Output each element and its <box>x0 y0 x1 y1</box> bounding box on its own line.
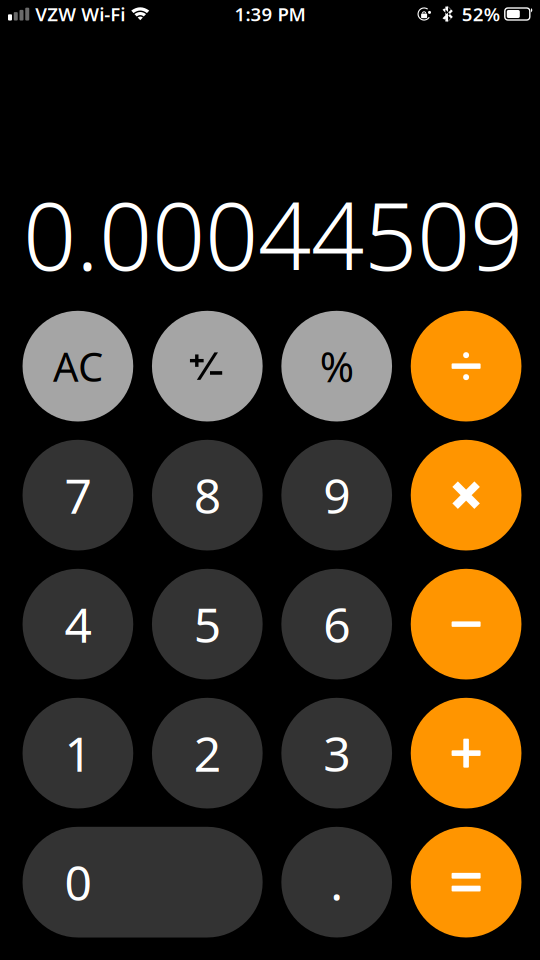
staticText: % <box>320 339 354 394</box>
staticText: 1:39 PM <box>234 2 305 26</box>
button[interactable]: . <box>281 827 392 937</box>
staticText: 6 <box>323 592 350 656</box>
button[interactable]: Multiply <box>411 440 521 550</box>
button[interactable]: 0 <box>23 827 263 937</box>
button[interactable]: 4 <box>23 569 133 679</box>
button[interactable]: Divide <box>411 311 521 421</box>
button[interactable]: Subtract <box>411 569 521 679</box>
staticText: . <box>330 850 343 914</box>
button[interactable]: Plus minus <box>152 311 263 421</box>
button[interactable]: 5 <box>152 569 263 679</box>
button[interactable]: 7 <box>23 440 133 550</box>
button[interactable]: 1 <box>23 698 133 808</box>
staticText: 0.00044509 <box>23 172 523 296</box>
button[interactable]: AC <box>23 311 133 421</box>
staticText: 7 <box>64 463 91 527</box>
staticText: 52% <box>462 2 500 26</box>
staticText: 3 <box>323 721 350 785</box>
button[interactable]: 3 <box>281 698 392 808</box>
staticText: 0 <box>64 850 91 914</box>
button[interactable]: 6 <box>281 569 392 679</box>
staticText: 2 <box>194 721 221 785</box>
staticText: 8 <box>194 463 221 527</box>
staticText: 5 <box>194 592 221 656</box>
staticText: AC <box>53 340 103 393</box>
button[interactable]: 9 <box>281 440 392 550</box>
button[interactable]: 2 <box>152 698 263 808</box>
button[interactable]: 8 <box>152 440 263 550</box>
staticText: VZW Wi-Fi <box>35 2 125 26</box>
button[interactable]: Equals <box>411 827 521 937</box>
staticText: 9 <box>323 463 350 527</box>
button[interactable]: Add <box>411 698 521 808</box>
staticText: 4 <box>64 592 91 656</box>
staticText: 1 <box>64 721 91 785</box>
button[interactable]: % <box>281 311 392 421</box>
